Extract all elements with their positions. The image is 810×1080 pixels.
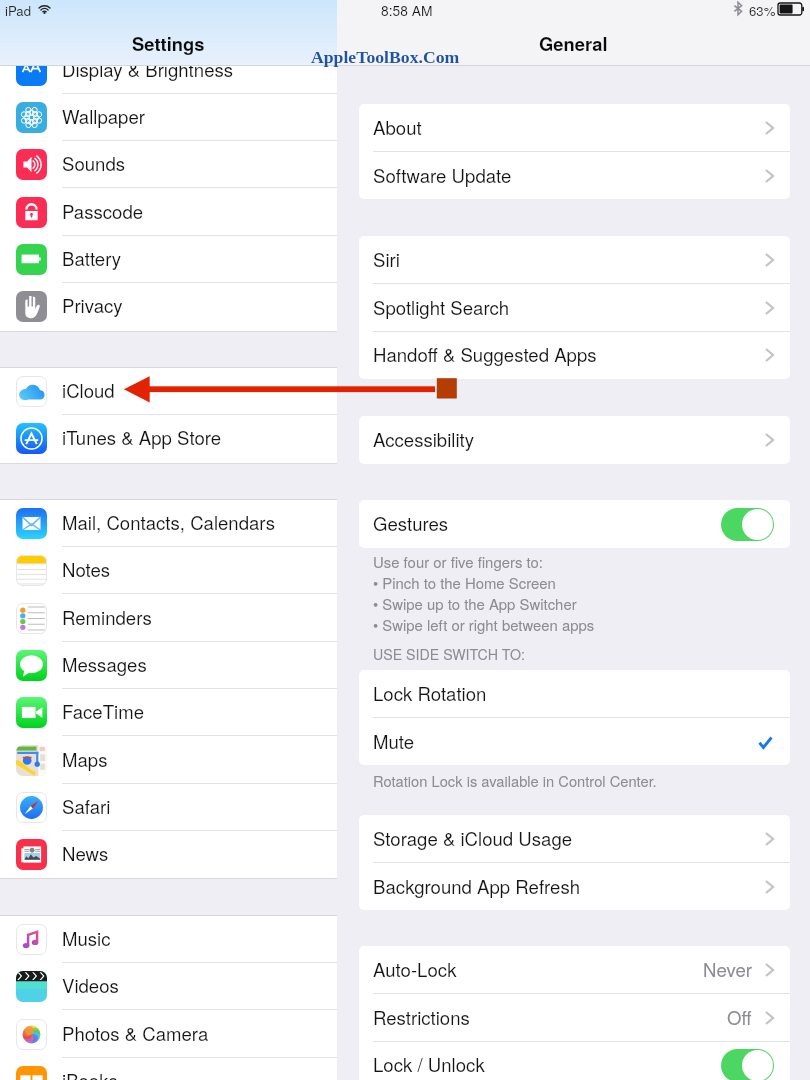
staticText: • Pinch to the Home Screen xyxy=(373,572,556,593)
staticText: Notes xyxy=(62,556,111,583)
button[interactable]: iBooks xyxy=(0,1058,337,1080)
staticText: Music xyxy=(62,925,111,952)
staticText: Storage & iCloud Usage xyxy=(373,825,573,852)
staticText: Battery xyxy=(62,245,122,272)
button[interactable]: Music xyxy=(0,916,337,963)
button[interactable]: Background App Refresh xyxy=(359,863,790,910)
staticText: Off xyxy=(727,1004,752,1031)
staticText: Siri xyxy=(373,246,400,273)
button[interactable]: Battery xyxy=(0,236,337,283)
staticText: Videos xyxy=(62,972,119,999)
button[interactable]: FaceTime xyxy=(0,689,337,736)
button[interactable]: About xyxy=(359,104,790,152)
button[interactable]: Auto-Lock xyxy=(359,946,790,994)
button[interactable]: Restrictions xyxy=(359,994,790,1042)
button[interactable]: Notes xyxy=(0,547,337,594)
staticText: About xyxy=(373,114,422,141)
button[interactable]: Videos xyxy=(0,963,337,1010)
button[interactable]: Mail, Contacts, Calendars xyxy=(0,500,337,547)
button[interactable]: Accessibility xyxy=(359,416,790,464)
button[interactable]: Lock / Unlock toggle xyxy=(721,1049,774,1080)
button[interactable]: Maps xyxy=(0,737,337,784)
staticText: Accessibility xyxy=(373,426,475,453)
staticText: FaceTime xyxy=(62,698,144,725)
button[interactable]: Lock Rotation xyxy=(359,670,790,718)
button[interactable]: Gestures toggle xyxy=(721,508,774,541)
staticText: iPad xyxy=(5,1,31,20)
button[interactable]: Wallpaper xyxy=(0,94,337,141)
staticText: 8:58 AM xyxy=(381,0,433,20)
staticText: Passcode xyxy=(62,198,144,225)
button[interactable]: Handoff & Suggested Apps xyxy=(359,331,790,379)
staticText: Gestures xyxy=(373,510,449,537)
staticText: iTunes & App Store xyxy=(62,424,222,451)
button[interactable]: Messages xyxy=(0,642,337,689)
button[interactable]: Storage & iCloud Usage xyxy=(359,815,790,863)
button[interactable]: News xyxy=(0,831,337,878)
button[interactable]: Passcode xyxy=(0,189,337,236)
staticText: AppleToolBox.Com xyxy=(311,47,460,67)
button[interactable]: Safari xyxy=(0,784,337,831)
staticText: Rotation Lock is available in Control Ce… xyxy=(373,770,657,791)
staticText: Mail, Contacts, Calendars xyxy=(62,509,275,536)
staticText: Safari xyxy=(62,793,111,820)
staticText: Sounds xyxy=(62,150,126,177)
staticText: Photos & Camera xyxy=(62,1020,209,1047)
staticText: Handoff & Suggested Apps xyxy=(373,341,597,368)
button[interactable]: Software Update xyxy=(359,152,790,199)
staticText: Privacy xyxy=(62,292,123,319)
staticText: General xyxy=(539,30,608,56)
staticText: Use four or five fingers to: xyxy=(373,551,543,572)
staticText: iBooks xyxy=(62,1067,118,1080)
button[interactable]: Spotlight Search xyxy=(359,284,790,332)
button[interactable]: Siri xyxy=(359,236,790,284)
staticText: • Swipe left or right between apps xyxy=(373,614,595,635)
staticText: Background App Refresh xyxy=(373,873,581,900)
button[interactable]: Photos & Camera xyxy=(0,1011,337,1058)
staticText: Reminders xyxy=(62,604,152,631)
staticText: Messages xyxy=(62,651,147,678)
staticText: Restrictions xyxy=(373,1004,470,1031)
staticText: News xyxy=(62,840,109,867)
staticText: 63% xyxy=(749,1,776,20)
button[interactable]: Gestures xyxy=(359,500,790,548)
staticText: USE SIDE SWITCH TO: xyxy=(373,644,525,664)
staticText: Mute xyxy=(373,728,415,755)
staticText: Maps xyxy=(62,746,108,773)
staticText: Lock / Unlock xyxy=(373,1051,485,1078)
staticText: • Swipe up to the App Switcher xyxy=(373,593,577,614)
staticText: Settings xyxy=(132,30,205,56)
button[interactable]: Privacy xyxy=(0,283,337,330)
button[interactable]: Display & Brightness xyxy=(0,47,337,94)
button[interactable]: Reminders xyxy=(0,595,337,642)
button[interactable]: Sounds xyxy=(0,141,337,188)
staticText: Auto-Lock xyxy=(373,956,457,983)
button[interactable]: iTunes & App Store xyxy=(0,415,337,462)
staticText: iCloud xyxy=(62,377,115,404)
staticText: Wallpaper xyxy=(62,103,145,130)
staticText: Display & Brightness xyxy=(62,56,234,83)
button[interactable]: iCloud xyxy=(0,368,337,415)
button[interactable]: Lock / Unlock xyxy=(359,1041,790,1080)
staticText: Lock Rotation xyxy=(373,680,487,707)
button[interactable]: Mute xyxy=(359,718,790,765)
staticText: Never xyxy=(703,956,752,983)
staticText: Spotlight Search xyxy=(373,294,510,321)
staticText: Software Update xyxy=(373,162,512,189)
